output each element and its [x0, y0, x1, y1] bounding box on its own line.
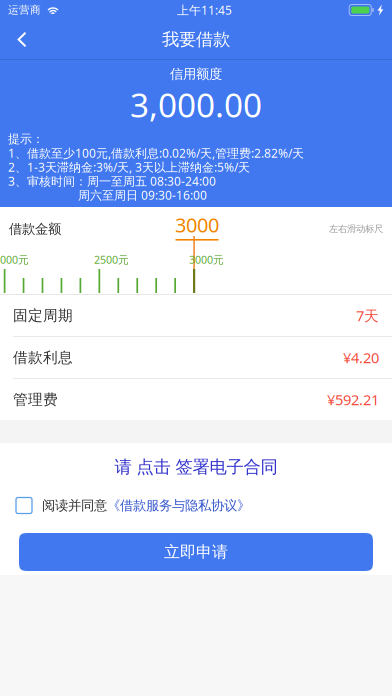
staticText: 3000元: [189, 252, 224, 267]
staticText: 阅读并同意: [42, 497, 107, 514]
button[interactable]: 请 点击 签署电子合同: [0, 450, 392, 484]
staticText: 借款金额: [9, 221, 61, 237]
button[interactable]: 立即申请: [19, 533, 373, 571]
staticText: 立即申请: [164, 542, 228, 562]
button[interactable]: Back: [0, 20, 44, 59]
staticText: 固定周期: [13, 306, 73, 324]
staticText: 《借款服务与隐私协议》: [107, 497, 250, 514]
staticText: 3,000.00: [130, 82, 262, 127]
staticText: 2500元: [94, 252, 129, 267]
staticText: 信用额度: [170, 66, 222, 82]
staticText: 2、1-3天滞纳金:3%/天, 3天以上滞纳金:5%/天: [8, 159, 250, 175]
staticText: 上午11:45: [177, 2, 232, 18]
staticText: 1、借款至少100元,借款利息:0.02%/天,管理费:2.82%/天: [8, 145, 304, 161]
staticText: 000元: [0, 252, 29, 267]
staticText: 提示：: [8, 132, 44, 146]
staticText: ¥4.20: [343, 348, 379, 367]
staticText: 请 点击 签署电子合同: [114, 456, 277, 478]
staticText: ¥592.21: [327, 390, 379, 409]
staticText: 借款利息: [13, 348, 73, 366]
staticText: 我要借款: [162, 29, 230, 50]
staticText: 左右滑动标尺: [329, 223, 383, 235]
staticText: 3、审核时间：周一至周五 08:30-24:00: [8, 173, 216, 189]
staticText: 3000: [175, 211, 219, 238]
staticText: 运营商: [8, 3, 41, 16]
staticText: 7天: [356, 306, 379, 325]
staticText: 周六至周日 09:30-16:00: [78, 187, 207, 203]
button[interactable]: 阅读并同意: [0, 484, 392, 527]
staticText: 管理费: [13, 390, 58, 408]
